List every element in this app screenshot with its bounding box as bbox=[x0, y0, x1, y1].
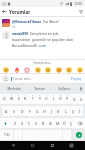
button[interactable]: J bbox=[48, 106, 55, 116]
button[interactable]: Emoji bbox=[44, 66, 51, 73]
staticText: V bbox=[35, 121, 38, 126]
button[interactable]: 8 bbox=[50, 94, 57, 104]
button[interactable]: Send bbox=[72, 130, 85, 140]
button[interactable]: Emoji bbox=[23, 66, 30, 73]
staticText: K bbox=[57, 109, 60, 114]
button[interactable]: 9 bbox=[57, 94, 64, 104]
button[interactable]: Tamam bbox=[27, 84, 52, 93]
button[interactable]: F bbox=[26, 106, 34, 116]
button[interactable]: K bbox=[55, 106, 62, 116]
button[interactable]: Ü bbox=[78, 94, 85, 104]
button[interactable]: Emoji bbox=[55, 66, 62, 73]
button[interactable]: 4 bbox=[22, 94, 29, 104]
staticText: R bbox=[24, 96, 27, 101]
button[interactable]: , bbox=[14, 130, 22, 140]
button[interactable]: Ş bbox=[69, 106, 76, 116]
button[interactable]: Emoji bbox=[34, 66, 41, 73]
staticText: E bbox=[18, 96, 20, 101]
staticText: C bbox=[28, 121, 31, 126]
staticText: Tamam bbox=[34, 87, 45, 91]
staticText: Far More! bbox=[43, 19, 59, 24]
staticText: M bbox=[56, 121, 60, 126]
button[interactable]: Home bbox=[27, 141, 38, 150]
staticText: Paylaşılanlar... bbox=[33, 61, 52, 65]
staticText: 6 bbox=[39, 94, 41, 97]
staticText: Yorum ekle... bbox=[13, 77, 33, 81]
button[interactable]: Yorum ekle... bbox=[11, 74, 70, 83]
button[interactable]: 1 bbox=[0, 94, 8, 104]
button[interactable]: Paylaş bbox=[70, 76, 83, 82]
button[interactable]: @RamonaYilmaz bbox=[0, 17, 85, 29]
staticText: .com bbox=[38, 43, 47, 48]
button[interactable]: Emoji bbox=[65, 66, 72, 73]
button[interactable]: Voice input bbox=[77, 84, 84, 93]
button[interactable]: Recent apps bbox=[47, 141, 58, 150]
button[interactable]: 2 bbox=[8, 94, 15, 104]
staticText: 3 bbox=[18, 94, 20, 97]
staticText: 2 bbox=[11, 94, 13, 97]
button[interactable]: V bbox=[33, 118, 40, 128]
button[interactable]: 0 bbox=[64, 94, 71, 104]
button[interactable]: Back bbox=[8, 141, 19, 150]
staticText: A bbox=[5, 109, 8, 114]
button[interactable]: Z bbox=[11, 118, 19, 128]
button[interactable]: Filter bbox=[76, 7, 85, 16]
button[interactable]: X bbox=[19, 118, 26, 128]
button[interactable]: Emoji bbox=[13, 66, 20, 73]
staticText: 4 bbox=[25, 94, 27, 97]
button[interactable]: ?123 bbox=[0, 130, 13, 140]
staticText: B bbox=[42, 121, 45, 126]
button[interactable]: Merhaba bbox=[1, 84, 27, 93]
button[interactable]: Emoji bbox=[76, 66, 83, 73]
button[interactable]: Ç bbox=[68, 118, 75, 128]
staticText: nazak890 bbox=[12, 31, 29, 36]
button[interactable]: 3 bbox=[15, 94, 22, 104]
button[interactable]: 5 bbox=[29, 94, 36, 104]
button[interactable]: L bbox=[62, 106, 69, 116]
button[interactable]: N bbox=[47, 118, 54, 128]
button[interactable]: Ğ bbox=[71, 94, 78, 104]
button[interactable]: C bbox=[26, 118, 33, 128]
staticText: U bbox=[45, 96, 48, 101]
button[interactable]: A bbox=[2, 106, 10, 116]
staticText: Ç bbox=[70, 121, 73, 126]
button[interactable]: Switch keyboard bbox=[66, 141, 77, 150]
staticText: Paylaş bbox=[71, 77, 82, 81]
button[interactable]: İ bbox=[76, 106, 83, 116]
staticText: 5 bbox=[32, 94, 34, 97]
button[interactable]: Emoji bbox=[2, 66, 9, 73]
button[interactable]: Backspace bbox=[75, 118, 85, 128]
button[interactable]: D bbox=[18, 106, 26, 116]
button[interactable]: Ö bbox=[61, 118, 68, 128]
staticText: , bbox=[18, 133, 19, 137]
button[interactable]: B bbox=[40, 118, 47, 128]
staticText: ?123 bbox=[4, 133, 10, 137]
button[interactable]: G bbox=[34, 106, 41, 116]
staticText: F bbox=[29, 109, 31, 114]
staticText: J bbox=[51, 109, 53, 114]
button[interactable]: Back bbox=[0, 7, 9, 16]
staticText: D bbox=[21, 109, 24, 114]
staticText: P bbox=[66, 96, 69, 101]
button[interactable]: nazak890 bbox=[0, 29, 85, 49]
button[interactable]: Shift bbox=[0, 118, 11, 128]
staticText: 12:03 bbox=[74, 2, 83, 6]
staticText: Y bbox=[39, 96, 41, 101]
staticText: 3s bbox=[12, 25, 16, 29]
button[interactable]: Kullanıcı bbox=[52, 84, 77, 93]
button[interactable]: 7 bbox=[43, 94, 50, 104]
staticText: Merhaba bbox=[7, 87, 21, 91]
staticText: S bbox=[13, 109, 15, 114]
staticText: İ bbox=[79, 109, 81, 114]
button[interactable]: H bbox=[41, 106, 48, 116]
staticText: Kullanıcı bbox=[58, 87, 71, 91]
staticText: Ş bbox=[72, 109, 74, 114]
staticText: Q bbox=[3, 96, 6, 101]
button[interactable]: 6 bbox=[36, 94, 43, 104]
button[interactable]: S bbox=[10, 106, 18, 116]
button[interactable]: M bbox=[54, 118, 61, 128]
staticText: G bbox=[36, 109, 39, 114]
staticText: H bbox=[43, 109, 46, 114]
